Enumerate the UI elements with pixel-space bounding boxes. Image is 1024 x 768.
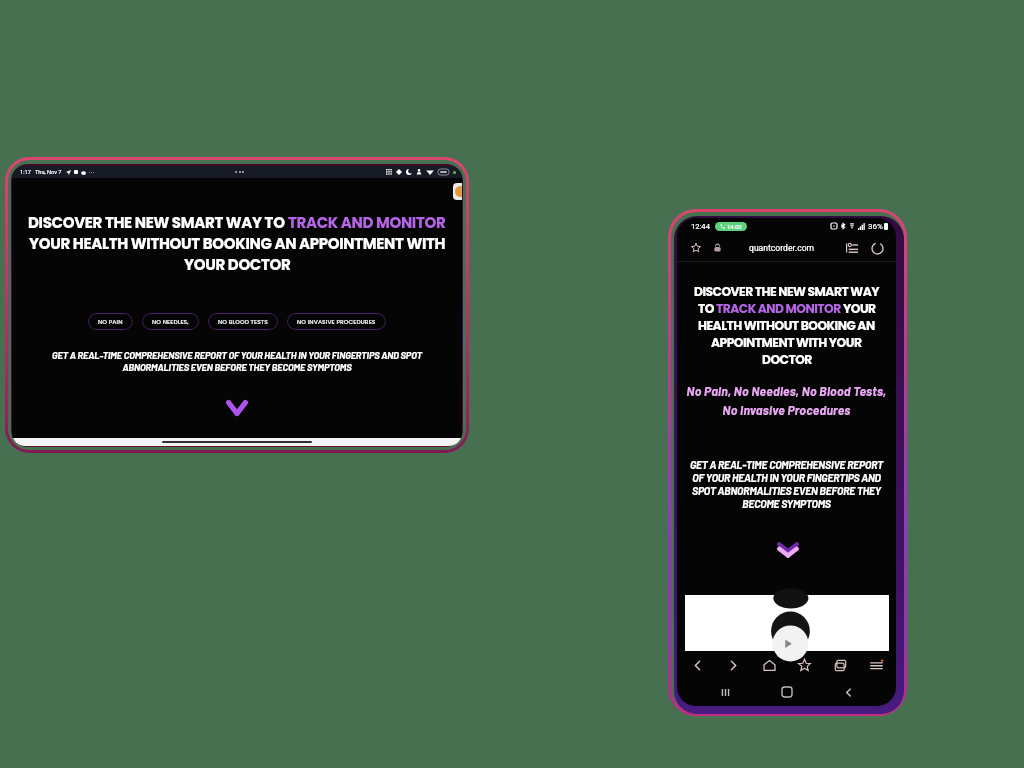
staticText: GET A REAL-TIME COMPREHENSIVE REPORT OF … bbox=[12, 350, 462, 373]
button[interactable]: Recents bbox=[712, 679, 738, 705]
staticText: NO INVASIVE PROCEDURES bbox=[297, 318, 376, 326]
staticText: TRACK AND MONITOR bbox=[716, 300, 841, 317]
button[interactable]: Reload bbox=[868, 239, 886, 257]
staticText: NO PAIN bbox=[98, 318, 123, 326]
staticText: NO NEEDLES, bbox=[152, 318, 189, 326]
staticText: 1:17 bbox=[20, 169, 31, 176]
staticText: TRACK AND MONITOR bbox=[288, 212, 446, 233]
staticText: 14:02 bbox=[727, 223, 742, 230]
button[interactable]: NO PAIN bbox=[88, 313, 133, 330]
button[interactable]: Home bbox=[774, 679, 800, 705]
staticText: GET A REAL-TIME COMPREHENSIVE REPORT OF … bbox=[677, 458, 896, 510]
staticText: APPOINTMENT WITH YOUR bbox=[711, 334, 862, 351]
other: Scroll down bbox=[777, 542, 799, 559]
staticText: YOUR HEALTH WITHOUT BOOKING AN APPOINTME… bbox=[29, 233, 446, 254]
staticText: HEALTH WITHOUT BOOKING AN bbox=[698, 317, 875, 334]
button[interactable]: Home bbox=[757, 653, 781, 677]
button[interactable]: NO INVASIVE PROCEDURES bbox=[287, 313, 386, 330]
button[interactable]: Tabs bbox=[828, 653, 852, 677]
staticText: 12:44 bbox=[691, 222, 710, 231]
staticText: NO BLOOD TESTS bbox=[218, 318, 268, 326]
button[interactable]: Reader mode bbox=[843, 239, 861, 257]
button[interactable]: Bookmarks bbox=[792, 653, 816, 677]
button[interactable]: Back bbox=[685, 653, 709, 677]
button[interactable]: NO NEEDLES, bbox=[142, 313, 199, 330]
staticText: Thu, Nov 7 bbox=[35, 169, 62, 176]
staticText: TO bbox=[698, 300, 716, 317]
staticText: YOUR bbox=[841, 300, 876, 317]
button[interactable]: NO BLOOD TESTS bbox=[208, 313, 278, 330]
staticText: 36% bbox=[868, 222, 883, 231]
button[interactable]: Back bbox=[835, 679, 861, 705]
button[interactable]: Bookmark bbox=[687, 239, 705, 257]
button[interactable]: Forward bbox=[721, 653, 745, 677]
staticText: DOCTOR bbox=[762, 351, 812, 368]
staticText: quantcorder.com bbox=[749, 243, 815, 253]
staticText: DISCOVER THE NEW SMART WAY TO bbox=[28, 212, 288, 233]
other: Scroll down bbox=[226, 400, 248, 416]
staticText: No Pain, No Needles, No Blood Tests, No … bbox=[677, 384, 896, 417]
staticText: DISCOVER THE NEW SMART WAY bbox=[694, 283, 879, 300]
button[interactable]: Menu bbox=[864, 653, 888, 677]
staticText: YOUR DOCTOR bbox=[184, 254, 291, 275]
